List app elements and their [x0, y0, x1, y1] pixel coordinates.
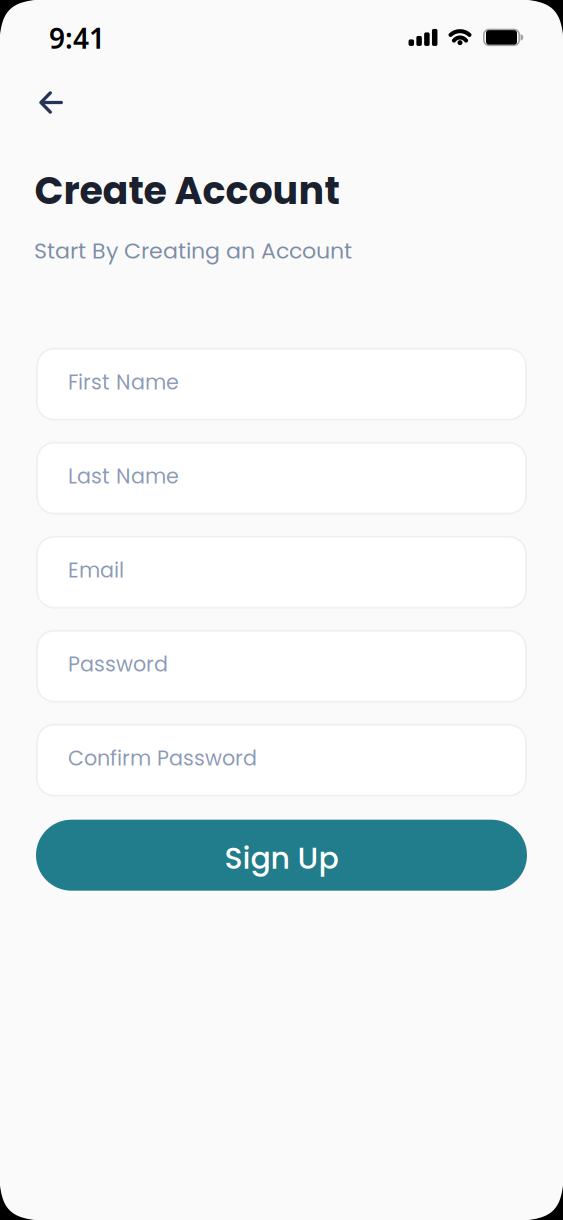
button[interactable]: Sign Up [36, 820, 527, 891]
staticText: First Name [68, 368, 179, 397]
button[interactable]: Email [36, 536, 527, 609]
staticText: Password [68, 650, 168, 679]
staticText: Sign Up [224, 837, 338, 879]
button[interactable]: Last Name [36, 442, 527, 515]
staticText: 9:41 [49, 19, 105, 56]
button[interactable]: Password [36, 630, 527, 703]
button[interactable]: Back [0, 56, 63, 113]
staticText: Confirm Password [68, 744, 257, 773]
staticText: Last Name [68, 462, 179, 491]
staticText: Start By Creating an Account [34, 235, 352, 266]
staticText: Create Account [34, 164, 339, 217]
button[interactable]: Confirm Password [36, 724, 527, 797]
staticText: Email [68, 556, 124, 585]
button[interactable]: First Name [36, 348, 527, 421]
